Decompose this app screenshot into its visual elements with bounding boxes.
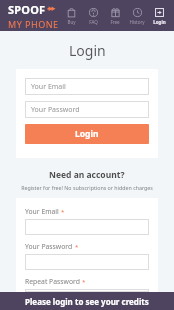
staticText: Login <box>153 19 166 25</box>
staticText: Buy <box>67 19 76 25</box>
staticText: * <box>82 278 86 286</box>
staticText: * <box>75 243 79 251</box>
staticText: Your Password <box>25 242 73 251</box>
staticText: MY PHONE <box>8 18 59 30</box>
staticText: Your Email <box>25 207 59 216</box>
staticText: Login <box>69 41 106 60</box>
button[interactable]: FAQ <box>82 7 104 25</box>
staticText: * <box>61 208 65 216</box>
button[interactable]: Your Password <box>25 101 149 118</box>
staticText: History <box>129 19 145 25</box>
button[interactable]: Login <box>25 124 149 144</box>
staticText: Register for free! No subscriptions or h… <box>21 184 153 191</box>
staticText: Login <box>75 128 99 140</box>
button[interactable]: SPOOF <box>8 2 59 30</box>
button[interactable]: Free <box>104 7 126 25</box>
staticText: Need an account? <box>49 169 125 181</box>
button[interactable] <box>25 289 149 292</box>
staticText: Repeat Password <box>25 277 80 286</box>
button[interactable] <box>25 254 149 270</box>
button[interactable]: Your Email <box>25 78 149 95</box>
button[interactable]: Please login to see your credits <box>0 292 174 310</box>
button[interactable]: History <box>126 7 148 25</box>
staticText: FAQ <box>89 19 98 25</box>
staticText: Please login to see your credits <box>25 296 149 307</box>
staticText: SPOOF <box>8 2 46 17</box>
staticText: Your Email <box>31 82 66 92</box>
button[interactable]: Buy <box>60 7 82 25</box>
staticText: Free <box>110 19 120 25</box>
staticText: Your Password <box>31 105 80 115</box>
button[interactable]: Login <box>148 7 170 25</box>
button[interactable] <box>25 219 149 235</box>
